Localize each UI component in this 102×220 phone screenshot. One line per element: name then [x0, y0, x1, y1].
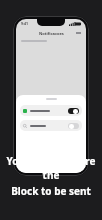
button[interactable]: Toggle on — [20, 105, 82, 116]
staticText: 9:41 — [21, 21, 28, 26]
button[interactable]: Toggle off — [20, 120, 82, 131]
button[interactable]: Toggle off — [68, 123, 79, 129]
staticText: You can configure the — [6, 154, 96, 182]
staticText: Notificacoes — [39, 31, 64, 36]
button[interactable]: Toggle on — [68, 108, 79, 114]
staticText: Block to be sent — [11, 184, 91, 198]
